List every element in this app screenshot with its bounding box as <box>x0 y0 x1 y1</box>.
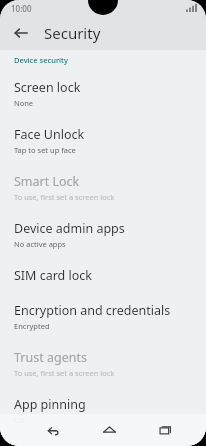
button[interactable]: Smart Lock <box>0 164 206 211</box>
button[interactable]: SIM card lock <box>0 258 206 293</box>
button[interactable]: Android Safe Browsing <box>0 434 206 446</box>
staticText: Smart Lock <box>14 173 80 190</box>
button[interactable]: Home <box>94 415 124 445</box>
staticText: Device admin apps <box>14 220 125 237</box>
button[interactable]: Encryption and credentials <box>0 293 206 340</box>
button[interactable]: Navigate up <box>8 20 34 46</box>
button[interactable]: Back <box>38 415 68 445</box>
staticText: To use, first set a screen lock <box>14 368 115 378</box>
staticText: 10:00 <box>11 3 32 14</box>
staticText: Security <box>44 23 101 43</box>
button[interactable]: Trust agents <box>0 340 206 387</box>
staticText: Face Unlock <box>14 126 85 143</box>
button[interactable]: Device admin apps <box>0 211 206 258</box>
staticText: Encryption and credentials <box>14 302 171 319</box>
staticText: Tap to set up face <box>14 145 76 155</box>
button[interactable]: App pinning <box>0 387 206 434</box>
staticText: No active apps <box>14 239 66 249</box>
staticText: App pinning <box>14 396 86 413</box>
staticText: To use, first set a screen lock <box>14 192 115 202</box>
button[interactable]: Screen lock <box>0 70 206 117</box>
staticText: Trust agents <box>14 349 87 366</box>
button[interactable]: Recent apps <box>150 415 180 445</box>
staticText: Screen lock <box>14 79 81 96</box>
staticText: Encrypted <box>14 321 50 331</box>
button[interactable]: Face Unlock <box>0 117 206 164</box>
staticText: Device security <box>14 55 68 65</box>
staticText: SIM card lock <box>14 267 93 284</box>
staticText: None <box>14 98 34 108</box>
